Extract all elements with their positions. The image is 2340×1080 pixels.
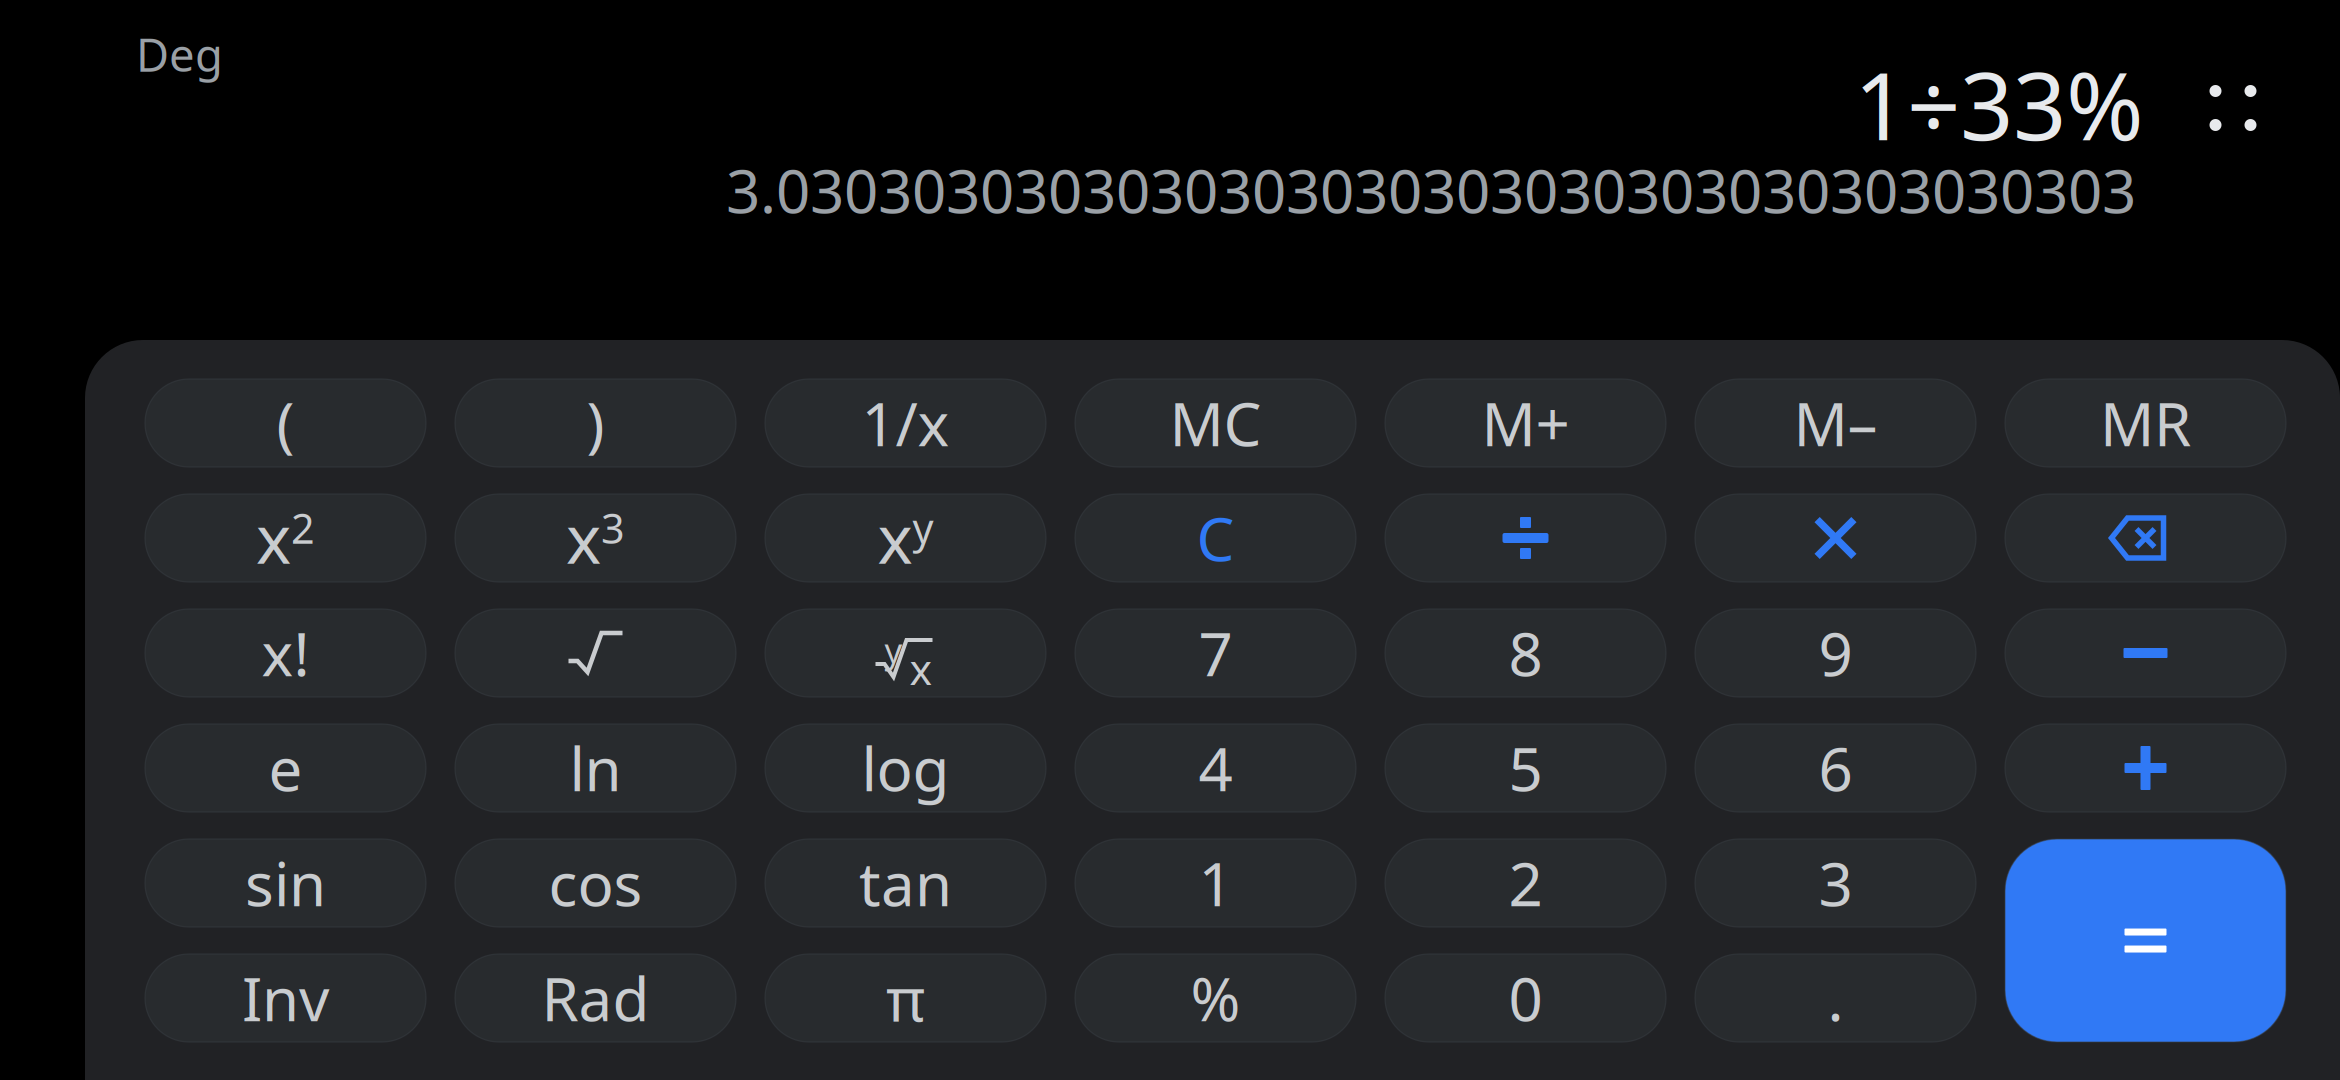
button[interactable]: Memory add <box>1385 379 1666 467</box>
button[interactable]: Backspace <box>2005 494 2286 582</box>
button[interactable]: Plus <box>2005 724 2286 812</box>
staticText: log <box>861 728 949 808</box>
staticText: 3.03030303030303030303030303030303030303… <box>726 150 2136 230</box>
button[interactable]: Equals <box>2005 839 2286 1042</box>
button[interactable]: Square root <box>455 609 736 697</box>
staticText: Inv <box>242 958 329 1038</box>
staticText: tan <box>859 843 952 923</box>
staticText: 2 <box>1508 843 1542 923</box>
staticText: M– <box>1793 383 1877 463</box>
button[interactable]: Open parenthesis <box>145 379 426 467</box>
button[interactable]: 1 <box>1075 839 1356 927</box>
button[interactable]: 4 <box>1075 724 1356 812</box>
button[interactable]: 5 <box>1385 724 1666 812</box>
button[interactable]: 8 <box>1385 609 1666 697</box>
button[interactable]: Pi <box>765 954 1046 1042</box>
staticText: 8 <box>1508 613 1542 693</box>
staticText: sin <box>245 843 326 923</box>
staticText: cos <box>548 843 642 923</box>
button[interactable]: 7 <box>1075 609 1356 697</box>
button[interactable]: Clear <box>1075 494 1356 582</box>
staticText: . <box>1827 958 1843 1038</box>
button[interactable]: Memory recall <box>2005 379 2286 467</box>
staticText: 1÷33% <box>1854 42 2144 166</box>
staticText: 1/x <box>861 383 949 463</box>
staticText: 1 <box>1198 843 1232 923</box>
staticText: x <box>909 640 932 697</box>
staticText: 3 <box>1818 843 1852 923</box>
button[interactable]: 2 <box>1385 839 1666 927</box>
button[interactable]: x to the power of y <box>765 494 1046 582</box>
button[interactable]: 6 <box>1695 724 1976 812</box>
staticText: M+ <box>1481 383 1569 463</box>
button[interactable]: Memory subtract <box>1695 379 1976 467</box>
staticText: x! <box>261 613 309 693</box>
staticText: MR <box>2100 383 2191 463</box>
button[interactable]: Factorial <box>145 609 426 697</box>
button[interactable]: Radians <box>455 954 736 1042</box>
staticText: 0 <box>1508 958 1542 1038</box>
staticText: MC <box>1169 383 1261 463</box>
button[interactable]: Reciprocal <box>765 379 1046 467</box>
staticText: 9 <box>1818 613 1852 693</box>
staticText: x2 <box>256 494 315 582</box>
button[interactable]: Percent <box>1075 954 1356 1042</box>
staticText: 5 <box>1508 728 1542 808</box>
button[interactable]: x squared <box>145 494 426 582</box>
button[interactable]: Multiply <box>1695 494 1976 582</box>
button[interactable]: Log <box>765 724 1046 812</box>
button[interactable]: Close parenthesis <box>455 379 736 467</box>
staticText: C <box>1196 498 1234 578</box>
staticText: x3 <box>566 494 625 582</box>
staticText: e <box>268 728 302 808</box>
staticText: 6 <box>1818 728 1852 808</box>
button[interactable]: Divide <box>1385 494 1666 582</box>
button[interactable]: 0 <box>1385 954 1666 1042</box>
staticText: % <box>1190 958 1240 1038</box>
button[interactable]: Cosine <box>455 839 736 927</box>
staticText: 7 <box>1198 613 1232 693</box>
button[interactable]: Nth root <box>765 609 1046 697</box>
staticText: ( <box>276 383 294 463</box>
button[interactable]: Memory clear <box>1075 379 1356 467</box>
button[interactable]: More options <box>2170 56 2296 152</box>
button[interactable]: e <box>145 724 426 812</box>
staticText: Rad <box>541 958 649 1038</box>
staticText: Deg <box>136 24 223 84</box>
button[interactable]: Minus <box>2005 609 2286 697</box>
staticText: y <box>884 627 902 673</box>
button[interactable]: Inverse <box>145 954 426 1042</box>
button[interactable]: 3 <box>1695 839 1976 927</box>
button[interactable]: Sine <box>145 839 426 927</box>
button[interactable]: 9 <box>1695 609 1976 697</box>
staticText: π <box>886 958 925 1038</box>
staticText: ln <box>569 728 621 808</box>
button[interactable]: x cubed <box>455 494 736 582</box>
button[interactable]: Decimal point <box>1695 954 1976 1042</box>
button[interactable]: Natural log <box>455 724 736 812</box>
button[interactable]: Tangent <box>765 839 1046 927</box>
staticText: xy <box>877 494 933 582</box>
staticText: ) <box>586 383 604 463</box>
staticText: 4 <box>1198 728 1232 808</box>
